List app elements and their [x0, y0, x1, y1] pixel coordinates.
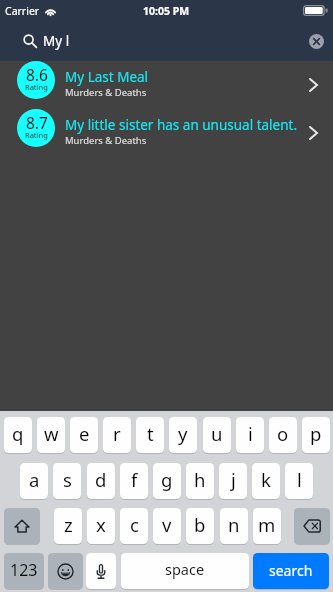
- button[interactable]: 123: [4, 553, 44, 589]
- staticText: Rating: [25, 82, 48, 92]
- staticText: space: [165, 559, 205, 579]
- staticText: j: [231, 467, 236, 492]
- staticText: i: [248, 421, 253, 446]
- button[interactable]: d: [87, 463, 115, 499]
- staticText: q: [12, 421, 24, 446]
- button[interactable]: f: [120, 463, 148, 499]
- button[interactable]: i: [236, 417, 264, 453]
- staticText: a: [29, 467, 40, 492]
- staticText: m: [258, 512, 276, 537]
- staticText: My l: [43, 32, 70, 50]
- button[interactable]: z: [54, 508, 82, 544]
- button[interactable]: g: [153, 463, 181, 499]
- staticText: Murders & Deaths: [65, 86, 147, 99]
- staticText: u: [211, 421, 223, 446]
- staticText: o: [277, 421, 289, 446]
- staticText: 8.7: [26, 112, 48, 133]
- button[interactable]: 8.6: [0, 61, 333, 109]
- button[interactable]: j: [219, 463, 247, 499]
- button[interactable]: e: [70, 417, 98, 453]
- button[interactable]: h: [186, 463, 214, 499]
- button[interactable]: o: [269, 417, 297, 453]
- button[interactable]: search: [253, 553, 329, 589]
- staticText: My little sister has an unusual talent.: [65, 116, 298, 134]
- staticText: c: [130, 512, 139, 537]
- staticText: w: [44, 421, 59, 446]
- staticText: n: [228, 512, 240, 537]
- button[interactable]: u: [203, 417, 231, 453]
- staticText: y: [178, 421, 188, 446]
- staticText: My Last Meal: [65, 68, 149, 86]
- button[interactable]: q: [4, 417, 32, 453]
- button[interactable]: v: [153, 508, 181, 544]
- staticText: b: [194, 512, 206, 537]
- button[interactable]: a: [20, 463, 48, 499]
- staticText: 8.6: [26, 64, 48, 85]
- button[interactable]: Clear search: [309, 34, 324, 49]
- staticText: Carrier: [5, 4, 40, 18]
- button[interactable]: w: [37, 417, 65, 453]
- staticText: 123: [10, 559, 38, 581]
- staticText: v: [162, 512, 172, 537]
- button[interactable]: 8.7: [0, 109, 333, 157]
- button[interactable]: s: [53, 463, 81, 499]
- staticText: x: [96, 512, 106, 537]
- button[interactable]: Dictation: [86, 553, 116, 589]
- button[interactable]: y: [169, 417, 197, 453]
- button[interactable]: Emoji: [48, 553, 83, 589]
- button[interactable]: r: [103, 417, 131, 453]
- staticText: f: [131, 467, 138, 492]
- staticText: 10:05 PM: [143, 4, 190, 18]
- staticText: t: [147, 421, 154, 446]
- button[interactable]: Shift: [4, 508, 40, 544]
- button[interactable]: p: [302, 417, 330, 453]
- staticText: p: [310, 421, 322, 446]
- staticText: k: [261, 467, 271, 492]
- staticText: r: [113, 421, 121, 446]
- staticText: g: [161, 467, 173, 492]
- staticText: search: [269, 561, 313, 580]
- button[interactable]: k: [252, 463, 280, 499]
- button[interactable]: l: [285, 463, 313, 499]
- button[interactable]: t: [136, 417, 164, 453]
- staticText: Murders & Deaths: [65, 134, 147, 147]
- button[interactable]: Backspace: [294, 508, 330, 544]
- staticText: h: [194, 467, 206, 492]
- staticText: e: [79, 421, 90, 446]
- button[interactable]: space: [121, 553, 249, 589]
- staticText: Rating: [25, 130, 48, 140]
- staticText: d: [95, 467, 107, 492]
- button[interactable]: b: [186, 508, 214, 544]
- button[interactable]: c: [120, 508, 148, 544]
- staticText: z: [64, 512, 73, 537]
- staticText: s: [63, 467, 72, 492]
- button[interactable]: x: [87, 508, 115, 544]
- button[interactable]: n: [220, 508, 248, 544]
- button[interactable]: m: [253, 508, 281, 544]
- staticText: l: [297, 467, 302, 492]
